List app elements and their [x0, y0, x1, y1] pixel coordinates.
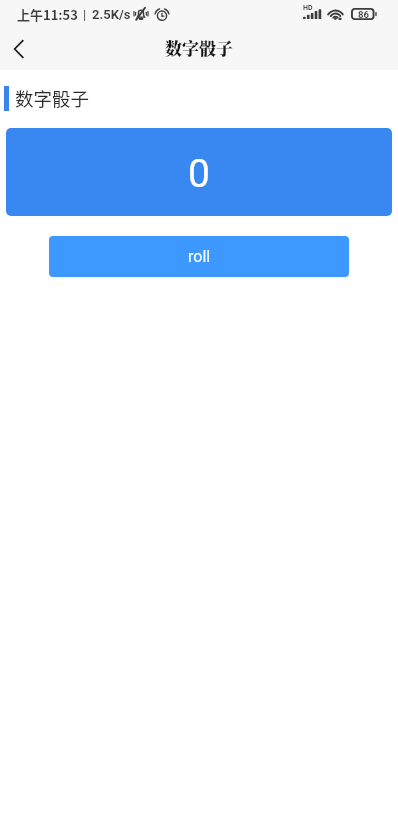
staticText: 86 — [358, 9, 369, 20]
staticText: 2.5K/s — [92, 7, 131, 22]
staticText: roll — [188, 247, 211, 266]
staticText: 上午11:53 — [17, 5, 78, 24]
staticText: | — [83, 7, 87, 22]
staticText: HD — [303, 4, 313, 12]
staticText: 数字骰子 — [15, 85, 90, 111]
button[interactable]: 0 — [6, 128, 392, 216]
staticText: 数字骰子 — [165, 35, 233, 59]
staticText: 0 — [188, 151, 210, 197]
button[interactable]: roll — [49, 236, 349, 277]
button[interactable]: Back — [0, 28, 38, 70]
